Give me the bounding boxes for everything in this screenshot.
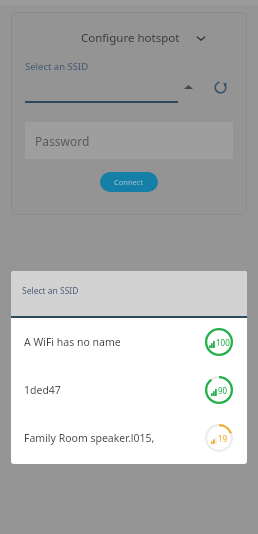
- staticText: Select an SSID: [22, 285, 79, 297]
- button[interactable]: Configure hotspot: [11, 24, 247, 52]
- staticText: Select an SSID: [25, 60, 89, 73]
- other: Expand: [194, 31, 208, 45]
- button[interactable]: Password: [25, 122, 233, 159]
- button[interactable]: A WiFi has no name: [11, 318, 247, 366]
- button[interactable]: Family Room speaker.l015,: [11, 414, 247, 462]
- staticText: 90: [218, 385, 228, 396]
- staticText: Password: [35, 133, 90, 149]
- staticText: 19: [218, 433, 228, 444]
- staticText: A WiFi has no name: [24, 335, 204, 349]
- staticText: 1ded47: [24, 383, 204, 397]
- staticText: Connect: [114, 177, 144, 187]
- staticText: 100: [216, 337, 230, 348]
- button[interactable]: 1ded47: [11, 366, 247, 414]
- button[interactable]: Connect: [100, 172, 158, 192]
- button[interactable]: Select an SSID: [11, 271, 247, 316]
- button[interactable]: Collapse list: [179, 78, 197, 96]
- button[interactable]: Refresh: [209, 77, 231, 97]
- staticText: Family Room speaker.l015,: [24, 431, 204, 445]
- staticText: Configure hotspot: [81, 30, 180, 46]
